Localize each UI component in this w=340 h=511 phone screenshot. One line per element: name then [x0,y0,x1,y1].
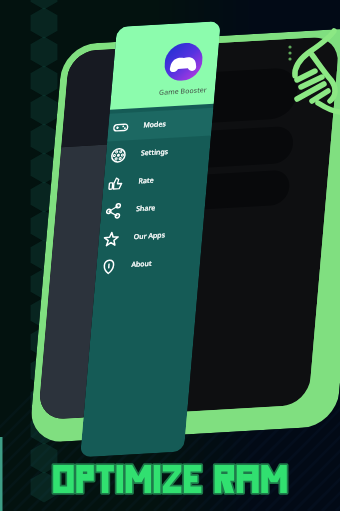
staticText: Our Apps [129,215,171,257]
button[interactable]: Settings [92,87,224,218]
button[interactable]: Rate [90,115,221,246]
staticText: About [126,249,157,280]
staticText: Share [131,194,161,224]
staticText: Game Booster [154,63,212,120]
button[interactable]: Modes [94,59,226,190]
button[interactable]: Our Apps [85,170,217,302]
button[interactable]: About [82,198,214,330]
staticText: Settings [136,134,174,172]
button[interactable]: Share [87,143,219,274]
staticText: Rate [133,168,159,194]
staticText: Modes [138,108,171,141]
